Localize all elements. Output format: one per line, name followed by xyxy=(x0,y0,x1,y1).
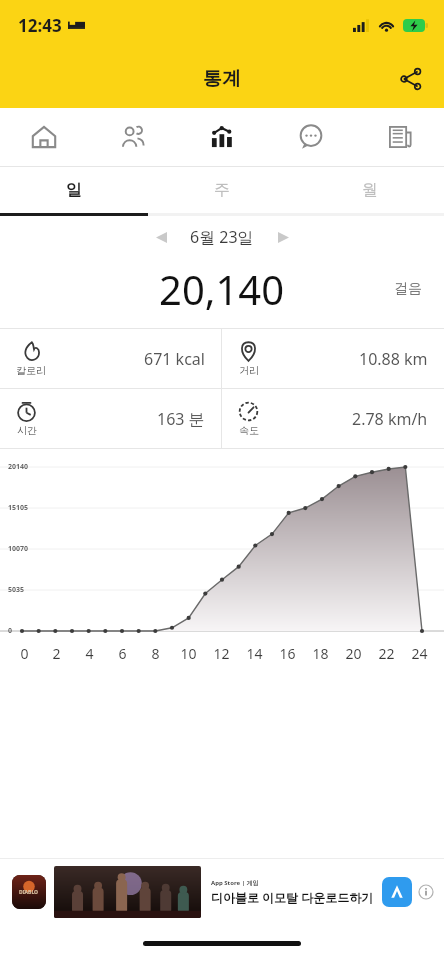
staticText: 시간 xyxy=(17,424,37,437)
other: Ad info xyxy=(418,884,434,900)
button[interactable]: 거리 xyxy=(222,329,444,388)
button[interactable]: 속도 xyxy=(222,389,444,448)
staticText: 671 kcal xyxy=(144,348,205,370)
staticText: 163 분 xyxy=(157,408,205,430)
button[interactable]: Share xyxy=(388,56,434,102)
staticText: 20,140 xyxy=(159,262,285,316)
staticText: DIABLO xyxy=(19,889,39,896)
staticText: 14 xyxy=(246,644,263,663)
staticText: App Store | 게임 xyxy=(211,879,259,887)
staticText: 속도 xyxy=(239,424,259,437)
button[interactable]: News xyxy=(355,108,444,166)
staticText: 6월 23일 xyxy=(190,226,254,248)
staticText: 5035 xyxy=(8,585,25,595)
staticText: 월 xyxy=(362,180,378,200)
staticText: 6 xyxy=(118,644,127,663)
button[interactable]: Statistics xyxy=(177,108,266,166)
staticText: 8 xyxy=(151,644,160,663)
button[interactable]: 시간 xyxy=(0,389,221,448)
button[interactable]: 칼로리 xyxy=(0,329,221,388)
staticText: 2 xyxy=(52,644,61,663)
button[interactable]: Next day xyxy=(266,220,300,254)
staticText: 칼로리 xyxy=(16,364,46,377)
button[interactable]: Previous day xyxy=(144,220,178,254)
button[interactable]: Friends xyxy=(88,108,177,166)
staticText: 일 xyxy=(66,180,82,200)
staticText: 15105 xyxy=(8,503,29,513)
staticText: 20140 xyxy=(8,462,29,472)
staticText: 0 xyxy=(20,644,29,663)
button[interactable]: 주 xyxy=(148,167,296,213)
staticText: 걸음 xyxy=(394,280,422,298)
staticText: 통계 xyxy=(203,67,241,91)
staticText: 10070 xyxy=(8,544,29,554)
staticText: 10.88 km xyxy=(359,348,428,370)
staticText: 2.78 km/h xyxy=(352,408,428,430)
staticText: 디아블로 이모탈 다운로드하기 xyxy=(211,889,374,905)
staticText: 10 xyxy=(180,644,197,663)
button[interactable]: DIABLO xyxy=(0,858,444,926)
staticText: 거리 xyxy=(239,364,259,377)
staticText: 12 xyxy=(213,644,230,663)
button[interactable]: Chat xyxy=(266,108,355,166)
staticText: 18 xyxy=(312,644,329,663)
staticText: 24 xyxy=(411,644,428,663)
staticText: 16 xyxy=(279,644,296,663)
staticText: 주 xyxy=(214,180,230,200)
staticText: 22 xyxy=(378,644,395,663)
button[interactable]: 일 xyxy=(0,167,148,213)
staticText: 12:43 xyxy=(18,14,62,37)
staticText: 4 xyxy=(85,644,94,663)
staticText: 20 xyxy=(345,644,362,663)
button[interactable]: Home xyxy=(0,108,88,166)
button[interactable]: 월 xyxy=(296,167,444,213)
staticText: 0 xyxy=(8,626,13,636)
